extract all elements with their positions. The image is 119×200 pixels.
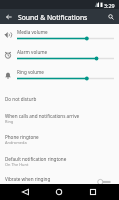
staticText: Default notification ringtone (5, 156, 67, 162)
button[interactable]: Media volume (0, 26, 119, 46)
staticText: Vibrate when ringing (5, 176, 51, 182)
button[interactable]: Alarm volume (0, 46, 119, 66)
button[interactable]: Navigate up (1, 9, 17, 24)
button[interactable]: Recent apps (81, 184, 105, 200)
staticText: Ring volume (17, 69, 44, 75)
staticText: Phone ringtone (5, 134, 39, 140)
staticText: Andromeda (5, 140, 27, 145)
staticText: 3:29 (104, 2, 115, 9)
button[interactable]: Back (13, 184, 37, 200)
button[interactable]: Home (47, 184, 71, 200)
staticText: On The Hunt (5, 162, 29, 167)
staticText: When calls and notifications arrive (5, 113, 80, 119)
button[interactable]: Vibrate when ringing (0, 172, 119, 186)
button[interactable]: Do not disturb (0, 92, 119, 106)
button[interactable]: Ring volume (0, 66, 119, 86)
staticText: Sound & Notifications (18, 13, 88, 22)
staticText: Alarm volume (17, 49, 48, 55)
button[interactable]: Default notification ringtone (0, 152, 119, 170)
staticText: Ring (5, 119, 14, 124)
button[interactable]: Search (103, 9, 118, 24)
button[interactable]: Phone ringtone (0, 130, 119, 148)
button[interactable]: When calls and notifications arrive (0, 109, 119, 127)
staticText: Media volume (17, 29, 48, 35)
staticText: Do not disturb (5, 96, 37, 102)
